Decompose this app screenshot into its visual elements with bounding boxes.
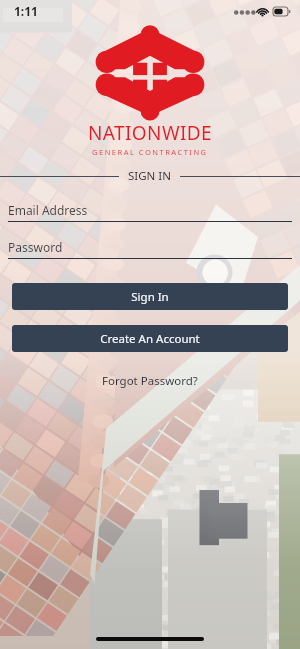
- staticText: GENERAL CONTRACTING: [92, 147, 208, 157]
- staticText: Create An Account: [100, 331, 200, 347]
- button[interactable]: Forgot Password?: [0, 372, 300, 390]
- staticText: 1:11: [14, 3, 38, 19]
- button[interactable]: Create An Account: [12, 325, 288, 352]
- staticText: Sign In: [131, 289, 169, 305]
- staticText: Email Address: [8, 202, 88, 218]
- button[interactable]: Password: [8, 236, 292, 259]
- staticText: NATIONWIDE: [88, 120, 213, 146]
- staticText: Forgot Password?: [102, 373, 198, 389]
- staticText: SIGN IN: [128, 168, 171, 184]
- staticText: Password: [8, 239, 63, 255]
- button[interactable]: Email Address: [8, 199, 292, 222]
- button[interactable]: Sign In: [12, 283, 288, 310]
